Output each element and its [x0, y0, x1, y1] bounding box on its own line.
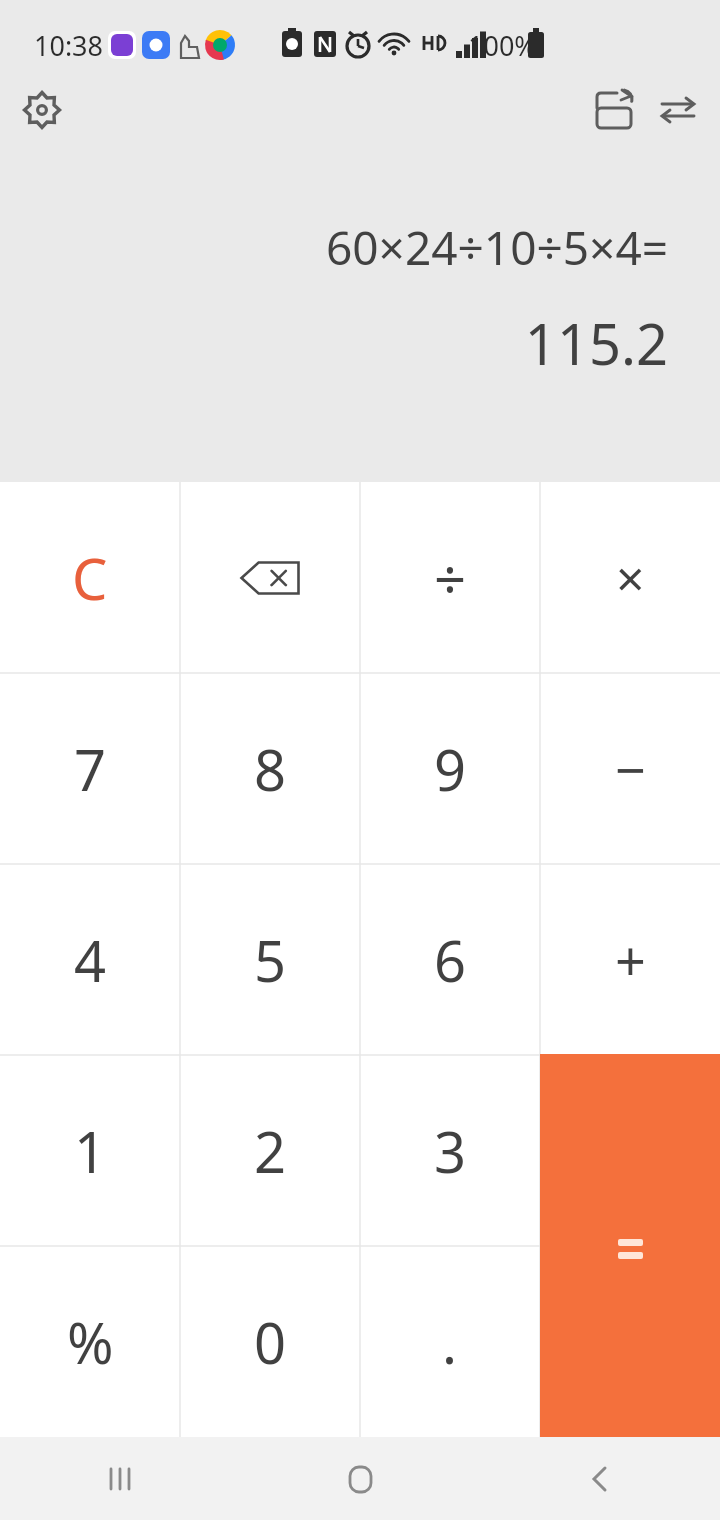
button[interactable]: . — [360, 1246, 540, 1437]
button[interactable]: + — [540, 864, 720, 1055]
staticText: 0 — [254, 1304, 287, 1380]
button[interactable]: 7 — [0, 673, 180, 864]
button[interactable]: 6 — [360, 864, 540, 1055]
staticText: C — [72, 540, 108, 616]
button[interactable]: Unit converter — [646, 78, 710, 142]
staticText: 2 — [254, 1113, 287, 1189]
button[interactable]: − — [540, 673, 720, 864]
button[interactable]: % — [0, 1246, 180, 1437]
button[interactable]: 2 — [180, 1055, 360, 1246]
staticText: 3 — [434, 1113, 467, 1189]
button[interactable]: Settings — [10, 78, 74, 142]
button[interactable]: Home — [312, 1437, 408, 1520]
staticText: . — [442, 1304, 458, 1380]
staticText: 115.2 — [524, 305, 668, 381]
staticText: 1 — [74, 1113, 107, 1189]
button[interactable]: 1 — [0, 1055, 180, 1246]
staticText: − — [615, 732, 646, 806]
button[interactable]: Backspace — [180, 482, 360, 673]
staticText: 4 — [74, 922, 107, 998]
staticText: 7 — [74, 731, 107, 807]
button[interactable]: C — [0, 482, 180, 673]
staticText: × — [616, 544, 645, 612]
button[interactable]: History — [582, 78, 646, 142]
staticText: 9 — [434, 731, 467, 807]
button[interactable]: 8 — [180, 673, 360, 864]
staticText: 8 — [254, 731, 287, 807]
button[interactable]: 9 — [360, 673, 540, 864]
staticText: ÷ — [434, 540, 467, 616]
staticText: 10:38 — [34, 27, 104, 64]
button[interactable]: Back — [552, 1437, 648, 1520]
button[interactable]: 5 — [180, 864, 360, 1055]
staticText: 5 — [254, 922, 287, 998]
staticText: + — [615, 923, 646, 997]
staticText: 100% — [468, 27, 537, 64]
button[interactable]: Recent apps — [72, 1437, 168, 1520]
button[interactable]: 0 — [180, 1246, 360, 1437]
button[interactable]: 4 — [0, 864, 180, 1055]
button[interactable]: × — [540, 482, 720, 673]
staticText: % — [67, 1304, 114, 1380]
button[interactable]: 3 — [360, 1055, 540, 1246]
staticText: 60×24÷10÷5×4= — [325, 216, 668, 279]
button[interactable]: ÷ — [360, 482, 540, 673]
staticText: 6 — [434, 922, 467, 998]
button[interactable]: Equals — [540, 1054, 720, 1437]
